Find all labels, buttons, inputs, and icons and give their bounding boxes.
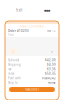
staticText: Total: [8, 72, 14, 75]
staticText: □: [12, 50, 15, 53]
staticText: Home: [48, 81, 56, 84]
staticText: x1: [51, 50, 54, 53]
staticText: 9:41: [16, 9, 23, 12]
staticText: Mar 12: [47, 29, 56, 33]
staticText: Ship to: [8, 81, 18, 84]
staticText: Paid: [8, 33, 14, 37]
staticText: Track Order: [25, 88, 39, 91]
button[interactable]: Track Order: [9, 87, 55, 92]
staticText: $4.99: [47, 63, 56, 66]
staticText: $42.00: [45, 58, 56, 62]
staticText: ●●●: [44, 9, 50, 12]
staticText: $3.36: [47, 67, 56, 71]
staticText: Order Confirmed: [20, 25, 44, 28]
staticText: Tax: [8, 67, 11, 71]
staticText: Paid with: [8, 76, 21, 80]
staticText: Visa 4242: [42, 76, 56, 80]
staticText: $50.35: [45, 72, 56, 75]
staticText: Order #10293: [8, 29, 29, 33]
staticText: Subtotal: [8, 58, 19, 62]
staticText: Shipping: [8, 63, 21, 66]
